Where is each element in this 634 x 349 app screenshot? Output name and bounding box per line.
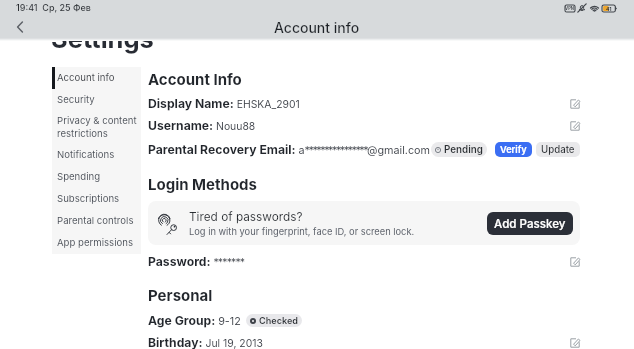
staticText: Notifications	[57, 149, 115, 161]
other: Wi-Fi	[590, 5, 599, 12]
staticText: Age Group: 9-12	[148, 313, 241, 328]
button[interactable]: Account info	[52, 67, 141, 89]
staticText: Tired of passwords?	[189, 210, 303, 224]
other: VPN	[565, 5, 575, 12]
staticText: Log in with your fingerprint, face ID, o…	[189, 226, 415, 237]
button[interactable]: Password: *******	[148, 254, 580, 269]
staticText: Update	[541, 144, 575, 156]
staticText: Checked	[259, 315, 298, 326]
button[interactable]: Edit	[570, 121, 580, 131]
button[interactable]: Subscriptions	[52, 188, 141, 210]
button[interactable]: Display Name: EHSKA_2901	[148, 96, 580, 111]
staticText: Account info	[57, 72, 115, 84]
staticText: Login Methods	[148, 175, 257, 193]
staticText: Pending	[444, 144, 483, 156]
button[interactable]: Security	[52, 89, 141, 111]
button[interactable]: Privacy & content restrictions	[52, 111, 141, 144]
button[interactable]: App permissions	[52, 232, 141, 254]
staticText: App permissions	[57, 237, 133, 249]
other: Battery 41 percent	[602, 5, 617, 12]
staticText: Birthday: Jul 19, 2013	[148, 335, 263, 349]
button[interactable]: Update	[536, 142, 580, 157]
staticText: Username: Nouu88	[148, 118, 256, 133]
button[interactable]: Back	[8, 16, 32, 38]
staticText: 19:41 Ср, 25 Фев	[16, 2, 91, 13]
button[interactable]: Verify	[495, 142, 532, 157]
staticText: Settings	[51, 23, 154, 54]
other: Notifications muted	[578, 4, 586, 12]
button[interactable]: Edit	[570, 257, 580, 267]
button[interactable]: Edit	[570, 99, 580, 109]
button[interactable]: Parental controls	[52, 210, 141, 232]
staticText: Password: *******	[148, 254, 245, 269]
button[interactable]: Username: Nouu88	[148, 118, 580, 133]
staticText: Subscriptions	[57, 193, 120, 205]
staticText: Personal	[148, 286, 213, 304]
staticText: Display Name: EHSKA_2901	[148, 96, 300, 111]
staticText: Account info	[274, 19, 360, 36]
button[interactable]: Birthday: Jul 19, 2013	[148, 335, 580, 349]
button[interactable]: Edit	[570, 338, 580, 348]
staticText: Security	[57, 94, 95, 106]
staticText: Add Passkey	[494, 217, 566, 231]
button[interactable]: Notifications	[52, 144, 141, 166]
button[interactable]: Add Passkey	[487, 212, 573, 235]
staticText: Account Info	[148, 70, 242, 88]
staticText: 41	[606, 6, 612, 12]
staticText: Privacy & content restrictions	[57, 115, 137, 140]
button[interactable]: Spending	[52, 166, 141, 188]
staticText: Verify	[500, 144, 527, 155]
staticText: Parental controls	[57, 215, 134, 227]
staticText: Parental Recovery Email: a**************…	[148, 142, 431, 157]
staticText: VPN	[565, 6, 575, 11]
staticText: Spending	[57, 171, 101, 183]
